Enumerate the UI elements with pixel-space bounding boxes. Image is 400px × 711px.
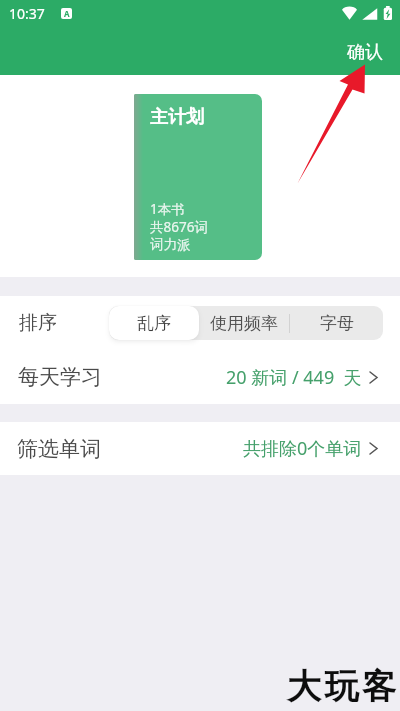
staticText: 筛选单词 (17, 436, 101, 462)
staticText: 乱序 (137, 313, 171, 334)
staticText: 词力派 (150, 236, 191, 253)
button[interactable]: 每天学习 (0, 350, 400, 404)
staticText: 10:37 (9, 4, 45, 23)
button[interactable]: 字母 (290, 306, 383, 340)
button[interactable]: 确认 (341, 37, 389, 68)
staticText: 确认 (347, 41, 383, 64)
staticText: 1本书 (150, 200, 185, 218)
staticText: 共排除0个单词 (243, 436, 362, 461)
staticText: 使用频率 (210, 313, 278, 334)
staticText: 20 新词 / 449 天 (226, 365, 362, 390)
staticText: 共8676词 (150, 218, 208, 236)
button[interactable]: 主计划 词书 (134, 94, 262, 260)
staticText: 大玩客 (287, 665, 400, 708)
staticText: 排序 (19, 311, 57, 335)
button[interactable]: 乱序 (109, 306, 199, 340)
staticText: 字母 (320, 313, 354, 334)
staticText: 主计划 (150, 106, 204, 129)
button[interactable]: 使用频率 (199, 306, 289, 340)
staticText: A (64, 8, 70, 19)
staticText: 每天学习 (18, 364, 102, 390)
button[interactable]: 筛选单词 (0, 422, 400, 475)
